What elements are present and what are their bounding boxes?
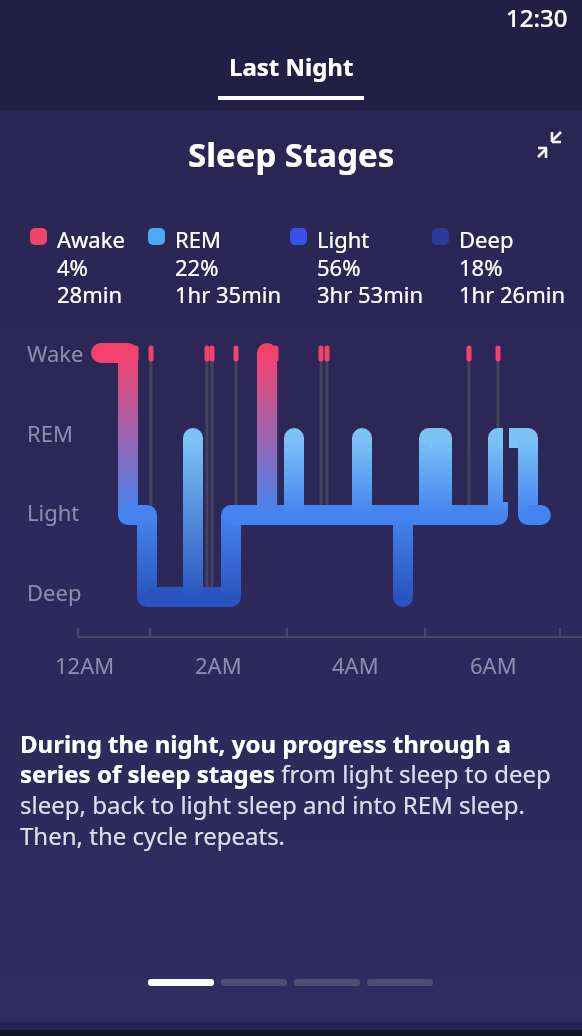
staticText: 12AM [55,650,115,680]
staticText: Sleep Stages [188,132,395,177]
staticText: Deep [459,224,514,254]
staticText: 18% [459,252,503,282]
staticText: Light [27,497,80,527]
button[interactable]: Last Night [218,50,364,100]
staticText: REM [27,418,73,448]
staticText: Deep [27,577,82,607]
staticText: Light [317,224,370,254]
staticText: 28min [57,279,123,309]
staticText: 3hr 53min [317,279,423,309]
staticText: 1hr 35min [175,279,281,309]
button[interactable] [530,124,566,160]
staticText: 4AM [332,650,379,680]
button[interactable] [367,979,433,986]
staticText: REM [175,224,221,254]
staticText: 6AM [470,650,517,680]
staticText: 2AM [195,650,242,680]
button[interactable] [148,979,214,986]
staticText: 4% [57,252,88,282]
button[interactable] [221,979,287,986]
staticText: 12:30 [506,1,568,34]
staticText: Last Night [229,50,354,83]
button[interactable] [294,979,360,986]
staticText: 22% [175,252,219,282]
staticText: 56% [317,252,361,282]
staticText: Awake [57,224,125,254]
staticText: Wake [27,338,84,368]
staticText: 1hr 26min [459,279,565,309]
staticText: During the night, you progress through a… [20,727,551,852]
